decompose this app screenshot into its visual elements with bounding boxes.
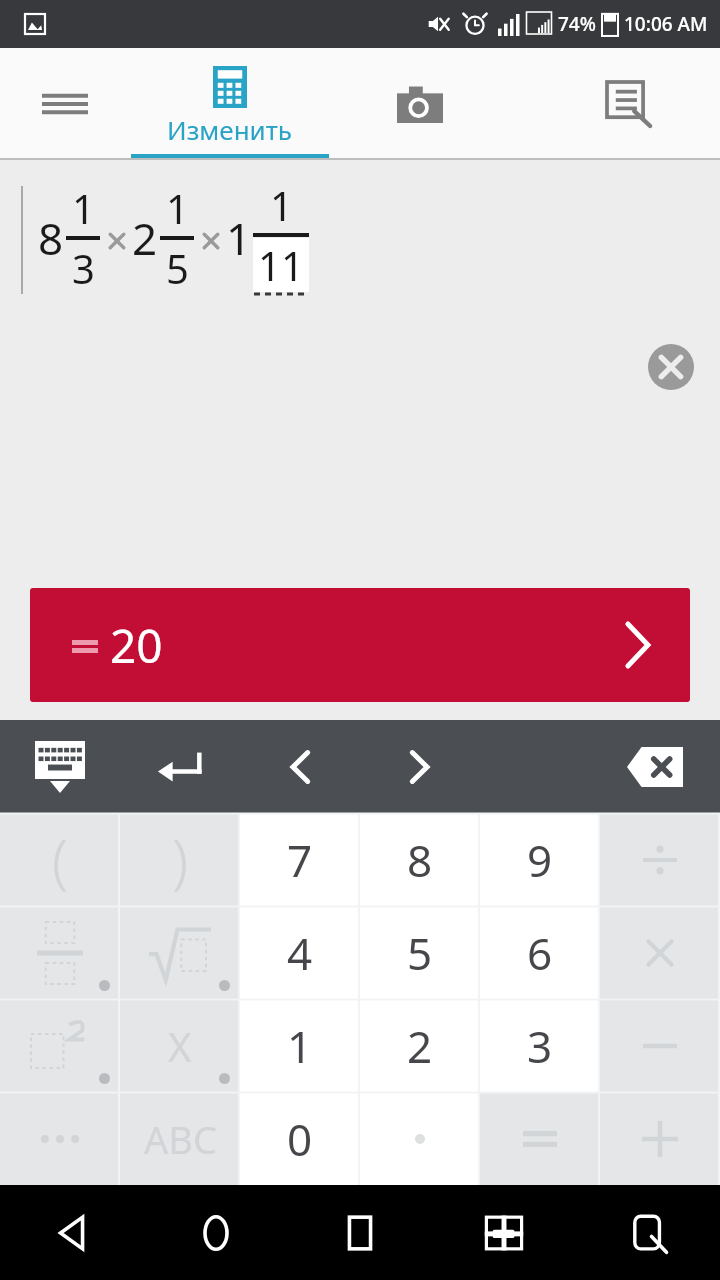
button[interactable]: Home bbox=[144, 1185, 288, 1280]
button[interactable]: Camera bbox=[330, 48, 510, 160]
button[interactable]: More bbox=[0, 1092, 120, 1185]
button[interactable]: Dual window bbox=[432, 1185, 576, 1280]
button[interactable]: 7 bbox=[240, 813, 360, 906]
staticText: 7 bbox=[287, 830, 313, 890]
button[interactable]: 5 bbox=[360, 906, 480, 999]
button[interactable] bbox=[600, 1092, 720, 1185]
button[interactable]: Power bbox=[0, 999, 120, 1092]
button[interactable]: Capture bbox=[576, 1185, 720, 1280]
button[interactable]: Recents bbox=[288, 1185, 432, 1280]
staticText: 3 bbox=[72, 241, 95, 295]
button[interactable]: ( bbox=[0, 813, 120, 906]
button[interactable]: 0 bbox=[240, 1092, 360, 1185]
button[interactable]: 2 bbox=[360, 999, 480, 1092]
button[interactable] bbox=[600, 906, 720, 999]
staticText: 4 bbox=[287, 923, 313, 983]
button[interactable]: 4 bbox=[240, 906, 360, 999]
button[interactable]: Back bbox=[0, 1185, 144, 1280]
staticText: 8 bbox=[38, 208, 64, 268]
button[interactable]: ABC bbox=[120, 1092, 240, 1185]
staticText: 9 bbox=[527, 830, 553, 890]
button[interactable]: Hide keyboard bbox=[0, 720, 120, 813]
staticText: ( bbox=[52, 820, 69, 899]
staticText: 10:06 AM bbox=[624, 11, 708, 37]
button[interactable] bbox=[600, 813, 720, 906]
button[interactable]: Move right bbox=[360, 720, 480, 813]
staticText: 1 bbox=[287, 1016, 313, 1076]
button[interactable]: Изменить bbox=[130, 48, 330, 160]
staticText: 2 bbox=[132, 208, 158, 268]
staticText: 2 bbox=[407, 1016, 433, 1076]
staticText: 6 bbox=[527, 923, 553, 983]
button[interactable]: Square root bbox=[120, 906, 240, 999]
button[interactable]: Clear bbox=[648, 344, 694, 390]
staticText: 20 bbox=[110, 614, 163, 677]
button[interactable]: Menu bbox=[0, 48, 130, 160]
staticText: 5 bbox=[407, 923, 433, 983]
button[interactable]: ) bbox=[120, 813, 240, 906]
staticText: 8 bbox=[407, 830, 433, 890]
button[interactable]: Fraction bbox=[0, 906, 120, 999]
button[interactable]: Notes bbox=[510, 48, 720, 160]
staticText: ABC bbox=[144, 1113, 217, 1165]
staticText: 1 bbox=[270, 178, 293, 232]
button[interactable]: X bbox=[120, 999, 240, 1092]
button[interactable]: Enter bbox=[120, 720, 240, 813]
button[interactable] bbox=[360, 1092, 480, 1185]
button[interactable]: 9 bbox=[480, 813, 600, 906]
staticText: ) bbox=[172, 820, 189, 899]
button[interactable]: Move left bbox=[240, 720, 360, 813]
button[interactable] bbox=[480, 1092, 600, 1185]
staticText: Изменить bbox=[167, 112, 293, 147]
staticText: X bbox=[168, 1019, 192, 1073]
button[interactable]: 8 bbox=[360, 813, 480, 906]
button[interactable]: Backspace bbox=[590, 720, 720, 813]
staticText: 1 bbox=[72, 181, 95, 235]
button[interactable]: 6 bbox=[480, 906, 600, 999]
staticText: 1 bbox=[166, 181, 189, 235]
staticText: 0 bbox=[287, 1109, 313, 1169]
button[interactable]: 1 bbox=[240, 999, 360, 1092]
button[interactable]: 3 bbox=[480, 999, 600, 1092]
staticText: 74% bbox=[558, 11, 596, 37]
button[interactable]: 20 bbox=[30, 588, 690, 702]
staticText: 5 bbox=[166, 241, 189, 295]
staticText: 11 bbox=[258, 238, 304, 292]
staticText: 1 bbox=[226, 208, 252, 268]
button[interactable] bbox=[600, 999, 720, 1092]
staticText: 3 bbox=[527, 1016, 553, 1076]
